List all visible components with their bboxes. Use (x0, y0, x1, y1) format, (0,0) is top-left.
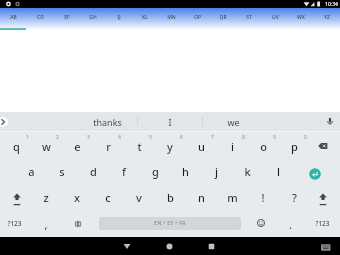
button[interactable]: EN • ES • FR (99, 217, 241, 230)
button[interactable]: WX (288, 8, 314, 27)
button[interactable]: i (218, 134, 246, 158)
button[interactable]: , (32, 212, 60, 236)
button[interactable] (149, 237, 189, 255)
button[interactable]: q (2, 134, 30, 158)
staticText: q (13, 139, 20, 154)
button[interactable]: AB (0, 8, 27, 27)
button[interactable]: . (276, 212, 304, 236)
staticText: p (291, 139, 298, 154)
button[interactable] (315, 237, 337, 255)
staticText: MN (167, 14, 176, 21)
staticText: 5 (149, 134, 152, 141)
button[interactable] (309, 134, 337, 158)
button[interactable]: GH (80, 8, 106, 27)
button[interactable]: ?123 (309, 212, 335, 234)
button[interactable]: e (63, 134, 91, 158)
button[interactable]: z (32, 185, 60, 209)
button[interactable]: ? (280, 185, 308, 209)
button[interactable]: m (218, 185, 246, 209)
button[interactable]: ?123 (1, 212, 27, 234)
staticText: CD (37, 14, 44, 21)
button[interactable]: x (63, 185, 91, 209)
button[interactable]: j (202, 159, 230, 183)
button[interactable] (307, 166, 323, 182)
staticText: a (28, 164, 35, 179)
button[interactable]: thanks (81, 112, 133, 131)
staticText: EN • ES • FR (154, 220, 186, 227)
button[interactable] (66, 213, 90, 235)
button[interactable]: IJ (106, 8, 132, 27)
button[interactable]: s (48, 159, 76, 183)
staticText: ?123 (7, 219, 22, 228)
staticText: . (289, 217, 292, 232)
button[interactable]: d (79, 159, 107, 183)
button[interactable]: r (94, 134, 122, 158)
staticText: OP (194, 14, 201, 21)
staticText: m (227, 190, 238, 205)
button[interactable]: l (264, 159, 292, 183)
staticText: UV (272, 14, 279, 21)
staticText: y (167, 139, 173, 154)
staticText: QR (219, 14, 227, 21)
button[interactable]: c (94, 185, 122, 209)
button[interactable]: b (156, 185, 184, 209)
staticText: I (168, 116, 172, 128)
staticText: d (90, 164, 97, 179)
staticText: i (231, 139, 234, 154)
staticText: GH (89, 14, 97, 21)
staticText: 3 (87, 134, 90, 141)
staticText: ? (292, 190, 297, 205)
button[interactable] (249, 212, 273, 234)
button[interactable]: YZ (314, 8, 340, 27)
staticText: g (152, 164, 159, 179)
button[interactable]: g (141, 159, 169, 183)
button[interactable]: UV (262, 8, 288, 27)
button[interactable]: w (32, 134, 60, 158)
button[interactable]: v (125, 185, 153, 209)
button[interactable]: t (125, 134, 153, 158)
staticText: f (122, 164, 126, 179)
button[interactable]: we (207, 112, 259, 131)
staticText: ! (261, 190, 265, 205)
button[interactable]: CD (27, 8, 54, 27)
button[interactable]: I (144, 112, 196, 131)
staticText: 0 (304, 134, 307, 141)
staticText: r (106, 139, 111, 154)
button[interactable]: p (280, 134, 308, 158)
button[interactable]: ST (236, 8, 262, 27)
button[interactable]: KL (132, 8, 158, 27)
button[interactable]: h (171, 159, 199, 183)
staticText: 4 (118, 134, 121, 141)
staticText: z (43, 190, 49, 205)
button[interactable]: a (17, 159, 45, 183)
button[interactable]: MN (158, 8, 184, 27)
staticText: 9 (273, 134, 276, 141)
staticText: u (198, 139, 205, 154)
button[interactable]: OP (184, 8, 210, 27)
button[interactable] (324, 114, 336, 128)
button[interactable] (309, 185, 337, 209)
staticText: WX (297, 14, 305, 21)
staticText: v (136, 190, 142, 205)
staticText: KL (142, 14, 148, 21)
button[interactable]: y (156, 134, 184, 158)
button[interactable]: u (187, 134, 215, 158)
button[interactable]: o (249, 134, 277, 158)
button[interactable]: QR (210, 8, 236, 27)
button[interactable] (3, 185, 31, 209)
staticText: 1 (26, 134, 29, 141)
button[interactable] (0, 116, 9, 128)
button[interactable] (191, 237, 231, 255)
staticText: o (260, 139, 267, 154)
staticText: YZ (324, 14, 330, 21)
staticText: x (74, 190, 80, 205)
staticText: thanks (93, 116, 122, 128)
button[interactable]: EF (54, 8, 80, 27)
staticText: 2 (56, 134, 59, 141)
button[interactable] (107, 237, 147, 255)
button[interactable]: ! (249, 185, 277, 209)
staticText: we (227, 116, 240, 128)
button[interactable]: k (233, 159, 261, 183)
button[interactable]: f (110, 159, 138, 183)
button[interactable]: n (187, 185, 215, 209)
